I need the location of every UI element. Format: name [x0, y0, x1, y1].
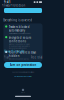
staticText: All of your requests are routed: [9, 43, 30, 45]
staticText: Sites only see a general area: [9, 58, 29, 60]
staticText: Terms and Privacy Policy: [14, 76, 32, 77]
staticText: Encrypted secure connections: [9, 36, 32, 43]
staticText: How this works: [4, 50, 24, 53]
staticText: Your IP address stays hidden: [9, 51, 36, 58]
staticText: they ever leave this device: [9, 47, 27, 49]
staticText: Privacy Protection: [1, 4, 25, 7]
staticText: Plan: [3, 56, 9, 59]
button[interactable]: More: [0, 89, 46, 93]
staticText: You can change this later in Settings: [11, 71, 34, 73]
button[interactable]: How this works: [4, 50, 24, 53]
staticText: Turn on protection: [9, 63, 36, 67]
staticText: Everything is covered: [3, 18, 32, 22]
staticText: Trackers blocked automatically: [9, 25, 30, 32]
staticText: 9:41: [4, 0, 11, 4]
button[interactable]: Terms and Privacy Policy: [0, 76, 46, 77]
button[interactable]: Protection active: [4, 8, 42, 13]
staticText: Free trial: [30, 56, 42, 59]
staticText: Nothing follows you between apps: [9, 33, 31, 34]
staticText: More: [21, 91, 25, 93]
button[interactable]: Turn on protection: [4, 62, 42, 68]
staticText: through a private relay before: [9, 45, 30, 47]
